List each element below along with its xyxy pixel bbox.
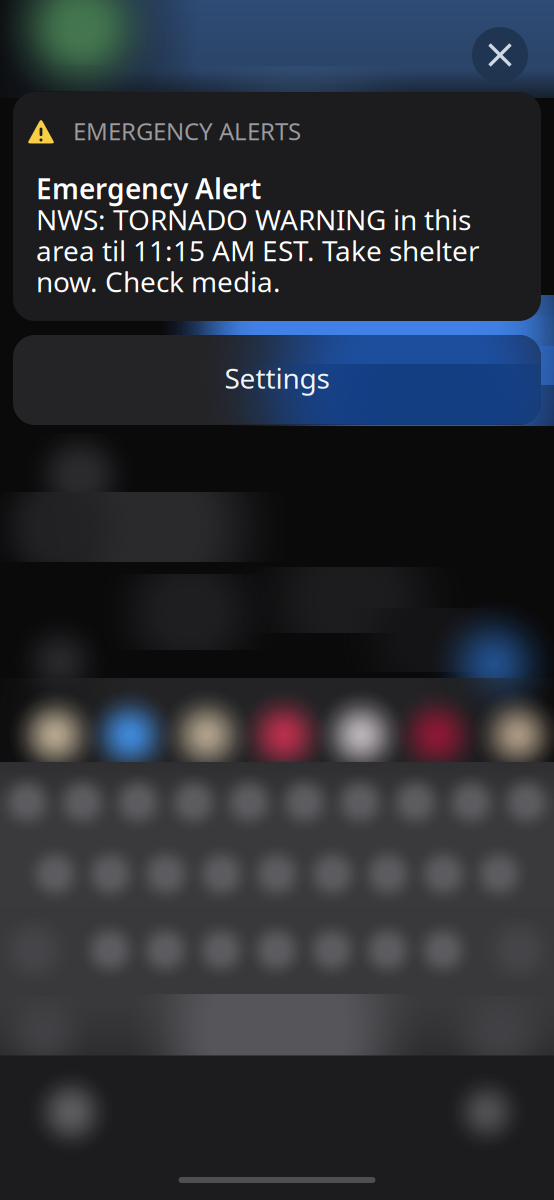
- staticText: EMERGENCY ALERTS: [73, 115, 301, 147]
- button[interactable]: EMERGENCY ALERTS: [13, 92, 541, 321]
- button[interactable]: Settings: [13, 335, 541, 425]
- staticText: NWS: TORNADO WARNING in this: [36, 201, 471, 238]
- staticText: area til 11:15 AM EST. Take shelter: [36, 232, 480, 269]
- button[interactable]: Close: [472, 27, 528, 83]
- staticText: now. Check media.: [36, 263, 281, 300]
- staticText: Settings: [224, 359, 329, 397]
- staticText: Emergency Alert: [36, 170, 261, 207]
